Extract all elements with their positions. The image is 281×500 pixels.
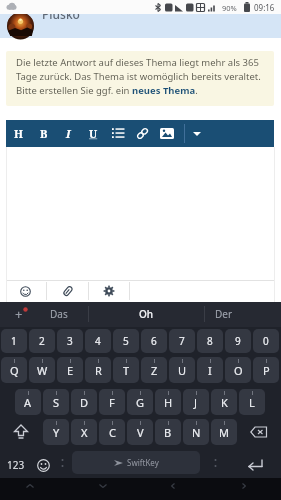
staticText: Das bbox=[50, 307, 68, 321]
staticText: 4 bbox=[95, 334, 101, 348]
staticText: 8 bbox=[207, 334, 213, 348]
button[interactable]: 7 bbox=[169, 329, 195, 353]
staticText: 2 bbox=[39, 334, 45, 348]
staticText: X bbox=[81, 425, 88, 440]
button[interactable]: K bbox=[211, 389, 237, 415]
staticText: 0 bbox=[263, 334, 269, 348]
staticText: G bbox=[136, 395, 145, 410]
staticText: B bbox=[40, 126, 48, 141]
button[interactable] bbox=[32, 452, 54, 478]
button[interactable] bbox=[160, 128, 174, 139]
button[interactable]: Z bbox=[141, 357, 167, 383]
button[interactable]: 6 bbox=[141, 329, 167, 353]
staticText: M bbox=[219, 425, 229, 440]
button[interactable]: Q bbox=[1, 357, 27, 383]
button[interactable]: 3 bbox=[57, 329, 83, 353]
button[interactable]: U bbox=[83, 122, 103, 145]
staticText: 3 bbox=[67, 334, 73, 348]
button[interactable]: H bbox=[155, 389, 181, 415]
staticText: D bbox=[80, 395, 89, 410]
button[interactable]: N bbox=[183, 419, 209, 445]
staticText: H bbox=[164, 395, 173, 410]
staticText: J bbox=[194, 395, 198, 410]
button[interactable]: U bbox=[169, 357, 195, 383]
button[interactable] bbox=[243, 419, 275, 445]
staticText: T bbox=[123, 363, 130, 378]
staticText: Bitte erstellen Sie ggf. ein neues Thema… bbox=[16, 84, 198, 97]
staticText: A bbox=[24, 395, 32, 410]
button[interactable] bbox=[47, 281, 88, 301]
button[interactable]: 2 bbox=[29, 329, 55, 353]
button[interactable] bbox=[6, 419, 36, 445]
button[interactable]: 9 bbox=[225, 329, 251, 353]
staticText: Z bbox=[151, 363, 158, 378]
staticText: 6 bbox=[151, 334, 157, 348]
button[interactable]: B bbox=[34, 122, 54, 145]
button[interactable]: W bbox=[29, 357, 55, 383]
button[interactable] bbox=[89, 281, 129, 301]
staticText: N bbox=[192, 425, 201, 440]
button[interactable] bbox=[112, 127, 125, 139]
staticText: C bbox=[109, 425, 116, 440]
staticText: Plusko bbox=[42, 6, 80, 22]
button[interactable]: F bbox=[99, 389, 125, 415]
button[interactable]: P bbox=[253, 357, 279, 383]
staticText: F bbox=[109, 395, 115, 410]
button[interactable]: G bbox=[127, 389, 153, 415]
staticText: Die letzte Antwort auf dieses Thema lieg… bbox=[16, 56, 259, 69]
button[interactable] bbox=[238, 452, 274, 476]
button[interactable]: Der bbox=[202, 303, 246, 325]
button[interactable]: E bbox=[57, 357, 83, 383]
button[interactable]: 0 bbox=[253, 329, 279, 353]
button[interactable]: Das bbox=[38, 303, 80, 325]
button[interactable] bbox=[191, 125, 203, 142]
button[interactable] bbox=[4, 281, 46, 301]
staticText: V bbox=[137, 425, 144, 440]
button[interactable]: Y bbox=[43, 419, 69, 445]
button[interactable]: X bbox=[71, 419, 97, 445]
button[interactable]: R bbox=[85, 357, 111, 383]
button[interactable]: 8 bbox=[197, 329, 223, 353]
staticText: I bbox=[66, 126, 71, 141]
staticText: U bbox=[89, 126, 98, 141]
staticText: I bbox=[208, 363, 212, 378]
staticText: S bbox=[53, 395, 60, 410]
staticText: 7 bbox=[179, 334, 185, 348]
staticText: L bbox=[249, 395, 255, 410]
staticText: Y bbox=[53, 425, 60, 440]
staticText: 09:16 bbox=[254, 2, 275, 13]
button[interactable]: 5 bbox=[113, 329, 139, 353]
staticText: B bbox=[164, 425, 172, 440]
button[interactable]: Oh bbox=[90, 303, 202, 325]
staticText: 5 bbox=[123, 334, 129, 348]
staticText: K bbox=[221, 395, 228, 410]
staticText: 90% bbox=[222, 3, 237, 13]
button[interactable]: 1 bbox=[1, 329, 27, 353]
button[interactable]: H bbox=[9, 122, 29, 145]
staticText: O bbox=[234, 363, 243, 378]
staticText: + bbox=[15, 305, 23, 323]
button[interactable]: J bbox=[183, 389, 209, 415]
button[interactable]: V bbox=[127, 419, 153, 445]
button[interactable]: M bbox=[211, 419, 237, 445]
button[interactable]: I bbox=[197, 357, 223, 383]
button[interactable]: A bbox=[15, 389, 41, 415]
button[interactable] bbox=[136, 127, 149, 140]
staticText: R bbox=[95, 363, 102, 378]
button[interactable]: C bbox=[99, 419, 125, 445]
button[interactable]: S bbox=[43, 389, 69, 415]
button[interactable]: B bbox=[155, 419, 181, 445]
button[interactable]: I bbox=[58, 122, 78, 145]
button[interactable]: D bbox=[71, 389, 97, 415]
button[interactable]: O bbox=[225, 357, 251, 383]
staticText: 1 bbox=[11, 334, 17, 348]
button[interactable]: 123 bbox=[0, 452, 32, 478]
button[interactable]: + bbox=[4, 303, 34, 325]
button[interactable]: SwiftKey bbox=[72, 451, 200, 474]
button[interactable]: T bbox=[113, 357, 139, 383]
button[interactable]: 4 bbox=[85, 329, 111, 353]
staticText: E bbox=[67, 363, 74, 378]
button[interactable]: L bbox=[239, 389, 265, 415]
staticText: Oh bbox=[139, 307, 154, 321]
